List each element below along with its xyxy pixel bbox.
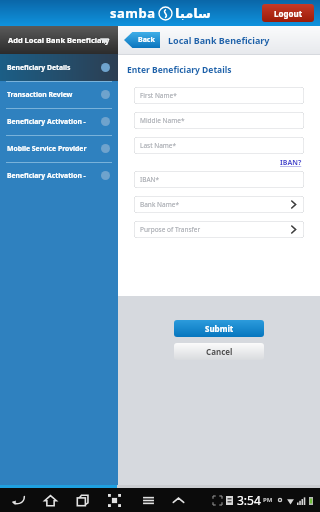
staticText: Beneficiary Activation - Step 1 xyxy=(7,117,96,126)
button[interactable]: Beneficiary Details xyxy=(0,54,118,81)
button[interactable]: Beneficiary Activation - Step 2 xyxy=(0,162,118,189)
button[interactable]: Expand xyxy=(168,490,188,510)
staticText: PM xyxy=(263,496,273,504)
button[interactable]: Purpose of Transfer xyxy=(134,221,304,238)
staticText: Transaction Review xyxy=(7,90,73,99)
staticText: Add Local Bank Beneficiary xyxy=(8,35,110,45)
button[interactable]: Back xyxy=(8,490,28,510)
staticText: Beneficiary Details xyxy=(7,63,71,72)
staticText: Enter Beneficiary Details xyxy=(127,64,232,76)
button[interactable]: Last Name* xyxy=(134,137,304,154)
staticText: Cancel xyxy=(206,346,233,357)
button[interactable]: Home xyxy=(40,490,60,510)
button[interactable]: Back xyxy=(124,32,162,48)
button[interactable]: IBAN? xyxy=(280,158,302,168)
button[interactable]: Transaction Review xyxy=(0,81,118,108)
button[interactable]: Recents xyxy=(72,490,92,510)
staticText: First Name* xyxy=(140,91,177,100)
staticText: IBAN* xyxy=(140,175,160,184)
staticText: Submit xyxy=(205,323,234,334)
staticText: 3:54 xyxy=(237,492,261,508)
button[interactable]: Logout xyxy=(262,4,314,22)
button[interactable]: IBAN* xyxy=(134,171,304,188)
staticText: Logout xyxy=(274,8,303,19)
staticText: Middle Name* xyxy=(140,116,185,125)
staticText: samba xyxy=(110,4,156,22)
button[interactable]: Menu xyxy=(138,490,158,510)
button[interactable]: Cancel xyxy=(174,343,264,360)
staticText: Mobile Service Provider Selection xyxy=(7,144,96,153)
button[interactable]: Bank Name* xyxy=(134,196,304,213)
button[interactable]: Add Local Bank Beneficiary xyxy=(0,26,118,54)
staticText: Bank Name* xyxy=(140,200,179,209)
staticText: سامبا xyxy=(175,6,211,21)
button[interactable]: Beneficiary Activation - Step 1 xyxy=(0,108,118,135)
staticText: Purpose of Transfer xyxy=(140,225,201,234)
staticText: Beneficiary Activation - Step 2 xyxy=(7,171,96,180)
other: Expand menu xyxy=(99,35,110,46)
button[interactable]: Submit xyxy=(174,320,264,337)
button[interactable]: Screenshot xyxy=(104,490,124,510)
staticText: Last Name* xyxy=(140,141,177,150)
button[interactable]: First Name* xyxy=(134,87,304,104)
staticText: Back xyxy=(138,35,155,45)
button[interactable]: Middle Name* xyxy=(134,112,304,129)
staticText: Local Bank Beneficiary xyxy=(168,34,270,46)
button[interactable]: Mobile Service Provider Selection xyxy=(0,135,118,162)
